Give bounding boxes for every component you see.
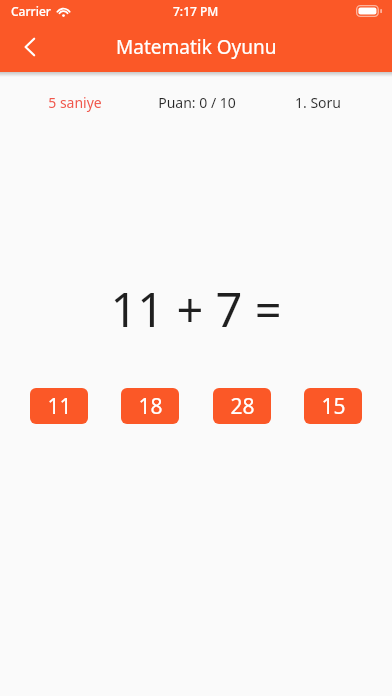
button[interactable]: 28 (213, 388, 271, 424)
staticText: 18 (138, 392, 163, 421)
staticText: 7:17 PM (173, 3, 219, 19)
button[interactable]: 15 (304, 388, 362, 424)
button[interactable]: Back (8, 25, 52, 69)
staticText: 5 saniye (48, 93, 102, 112)
staticText: 1. Soru (295, 93, 341, 112)
staticText: 11 (47, 392, 72, 421)
staticText: Carrier (11, 3, 51, 19)
staticText: Matematik Oyunu (116, 34, 277, 60)
staticText: Puan: 0 / 10 (158, 93, 236, 112)
button[interactable]: 11 (30, 388, 88, 424)
staticText: 11 + 7 = (110, 277, 282, 341)
staticText: 15 (321, 392, 346, 421)
button[interactable]: 18 (121, 388, 179, 424)
staticText: 28 (230, 392, 255, 421)
